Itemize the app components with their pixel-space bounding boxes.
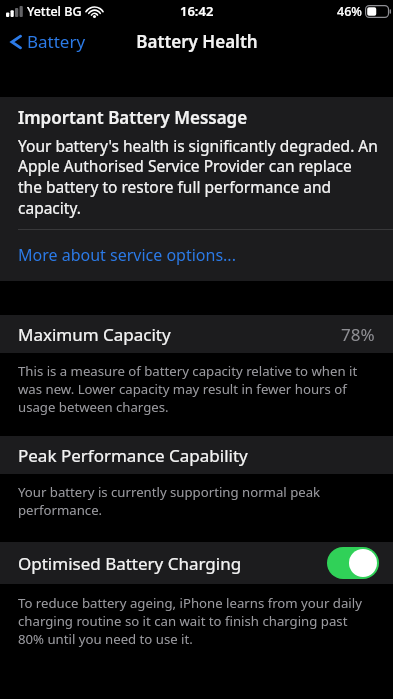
staticText: 78% xyxy=(341,323,375,346)
staticText: Peak Performance Capability xyxy=(18,444,248,467)
button[interactable]: Optimised Battery Charging xyxy=(0,542,393,584)
button[interactable]: Maximum Capacity xyxy=(0,315,393,353)
button[interactable]: Optimised Battery Charging toggle xyxy=(327,547,379,579)
staticText: Optimised Battery Charging xyxy=(18,552,242,575)
staticText: This is a measure of battery capacity re… xyxy=(18,362,375,416)
staticText: More about service options... xyxy=(18,244,236,266)
staticText: 16:42 xyxy=(180,2,214,20)
staticText: Battery xyxy=(27,30,86,53)
staticText: Battery Health xyxy=(136,30,258,53)
button[interactable]: Peak Performance Capability xyxy=(0,436,393,474)
staticText: Maximum Capacity xyxy=(18,323,171,346)
button[interactable]: More about service options... xyxy=(0,230,393,281)
staticText: 46% xyxy=(337,3,362,20)
staticText: Your battery is currently supporting nor… xyxy=(18,483,375,519)
staticText: Yettel BG xyxy=(27,3,82,20)
button[interactable]: Battery xyxy=(0,26,96,57)
staticText: To reduce battery ageing, iPhone learns … xyxy=(18,594,375,648)
staticText: Important Battery Message xyxy=(18,106,248,129)
staticText: Your battery's health is significantly d… xyxy=(18,135,379,219)
